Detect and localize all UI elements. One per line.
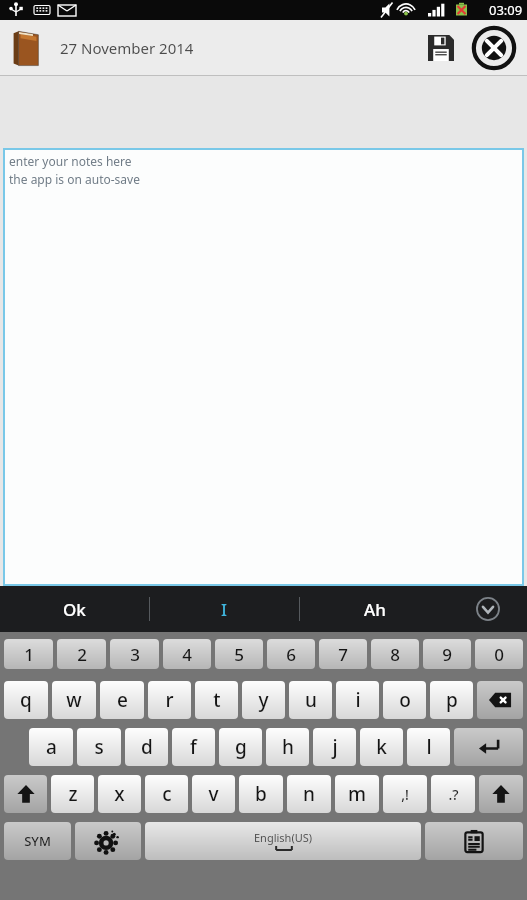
staticText: the app is on auto-save xyxy=(9,171,140,187)
staticText: f xyxy=(190,734,197,760)
button[interactable]: t xyxy=(195,681,238,719)
staticText: Ah xyxy=(364,598,386,621)
staticText: 1 xyxy=(24,643,34,666)
staticText: .? xyxy=(448,785,459,804)
button[interactable]: o xyxy=(383,681,426,719)
button[interactable]: h xyxy=(266,728,309,766)
staticText: English(US) xyxy=(254,830,313,845)
staticText: c xyxy=(162,781,172,807)
button[interactable]: Shift xyxy=(479,775,523,813)
staticText: j xyxy=(332,734,338,760)
button[interactable]: s xyxy=(77,728,121,766)
button[interactable]: 5 xyxy=(215,639,263,669)
staticText: h xyxy=(282,734,294,760)
button[interactable]: Close xyxy=(469,23,519,73)
button[interactable]: f xyxy=(172,728,215,766)
staticText: enter your notes here xyxy=(9,153,132,169)
button[interactable]: b xyxy=(239,775,283,813)
staticText: 3 xyxy=(130,643,140,666)
staticText: ,! xyxy=(401,785,409,804)
staticText: a xyxy=(46,734,57,760)
button[interactable]: SYM xyxy=(4,822,71,860)
button[interactable]: u xyxy=(289,681,332,719)
staticText: 4 xyxy=(182,643,192,666)
button[interactable]: p xyxy=(430,681,473,719)
button[interactable]: Backspace xyxy=(477,681,523,719)
staticText: 2 xyxy=(77,643,87,666)
staticText: t xyxy=(213,687,221,713)
staticText: x xyxy=(114,781,125,807)
button[interactable]: 3 xyxy=(110,639,159,669)
staticText: s xyxy=(94,734,104,760)
staticText: p xyxy=(446,687,458,713)
staticText: o xyxy=(399,687,411,713)
button[interactable]: Ah xyxy=(300,586,449,632)
button[interactable]: ,! xyxy=(383,775,427,813)
button[interactable]: Keyboard settings xyxy=(75,822,141,860)
staticText: r xyxy=(165,687,174,713)
button[interactable]: j xyxy=(313,728,356,766)
staticText: I xyxy=(221,598,228,621)
button[interactable]: c xyxy=(145,775,188,813)
staticText: n xyxy=(303,781,315,807)
button[interactable]: e xyxy=(100,681,144,719)
button[interactable]: 2 xyxy=(57,639,106,669)
staticText: m xyxy=(348,781,366,807)
button[interactable]: Save xyxy=(419,26,463,70)
button[interactable]: g xyxy=(219,728,262,766)
staticText: u xyxy=(305,687,317,713)
staticText: Ok xyxy=(63,598,86,621)
staticText: k xyxy=(376,734,387,760)
button[interactable]: enter your notes here xyxy=(3,148,524,586)
button[interactable]: d xyxy=(125,728,168,766)
button[interactable]: I xyxy=(150,586,299,632)
staticText: 03:09 xyxy=(489,1,523,19)
button[interactable]: m xyxy=(335,775,379,813)
staticText: 0 xyxy=(494,643,504,666)
button[interactable]: Clipboard xyxy=(425,822,523,860)
button[interactable]: i xyxy=(336,681,379,719)
button[interactable]: 6 xyxy=(267,639,315,669)
staticText: d xyxy=(141,734,153,760)
button[interactable]: l xyxy=(407,728,450,766)
button[interactable]: 1 xyxy=(4,639,53,669)
staticText: 8 xyxy=(390,643,400,666)
button[interactable]: z xyxy=(51,775,94,813)
button[interactable]: y xyxy=(242,681,285,719)
button[interactable]: a xyxy=(29,728,73,766)
staticText: l xyxy=(426,734,432,760)
staticText: 27 November 2014 xyxy=(60,38,194,58)
button[interactable]: Space xyxy=(145,822,421,860)
staticText: i xyxy=(355,687,361,713)
staticText: g xyxy=(235,734,247,760)
staticText: SYM xyxy=(24,832,51,850)
button[interactable]: x xyxy=(98,775,141,813)
button[interactable]: Shift xyxy=(4,775,47,813)
button[interactable]: 7 xyxy=(319,639,367,669)
staticText: z xyxy=(68,781,78,807)
button[interactable]: 8 xyxy=(371,639,419,669)
staticText: e xyxy=(117,687,128,713)
staticText: w xyxy=(66,687,82,713)
staticText: y xyxy=(258,687,269,713)
staticText: 5 xyxy=(234,643,244,666)
button[interactable]: 9 xyxy=(423,639,471,669)
button[interactable]: Expand suggestions xyxy=(449,586,527,632)
button[interactable]: Ok xyxy=(0,586,149,632)
staticText: q xyxy=(20,687,32,713)
button[interactable]: w xyxy=(52,681,96,719)
button[interactable]: .? xyxy=(431,775,475,813)
button[interactable]: Enter xyxy=(454,728,523,766)
button[interactable]: r xyxy=(148,681,191,719)
button[interactable]: 0 xyxy=(475,639,523,669)
staticText: b xyxy=(255,781,267,807)
button[interactable]: v xyxy=(192,775,235,813)
staticText: v xyxy=(208,781,219,807)
button[interactable]: 4 xyxy=(163,639,211,669)
staticText: 9 xyxy=(442,643,452,666)
staticText: 7 xyxy=(338,643,348,666)
button[interactable]: n xyxy=(287,775,331,813)
staticText: 6 xyxy=(286,643,296,666)
button[interactable]: q xyxy=(4,681,48,719)
button[interactable]: k xyxy=(360,728,403,766)
